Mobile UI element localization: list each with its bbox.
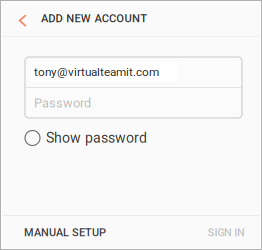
button[interactable]: Password [25,88,242,118]
staticText: Show password [46,130,147,146]
button[interactable]: tony@virtualteamit.com [25,57,242,87]
staticText: Password [34,95,91,110]
staticText: MANUAL SETUP [24,226,106,239]
staticText: SIGN IN [208,226,245,239]
button[interactable]: Back [0,0,38,37]
button[interactable]: SIGN IN [192,215,262,250]
staticText: tony@virtualteamit.com [34,65,159,79]
button[interactable]: Show password [0,124,262,154]
staticText: ADD NEW ACCOUNT [41,12,147,25]
button[interactable]: MANUAL SETUP [0,215,122,250]
